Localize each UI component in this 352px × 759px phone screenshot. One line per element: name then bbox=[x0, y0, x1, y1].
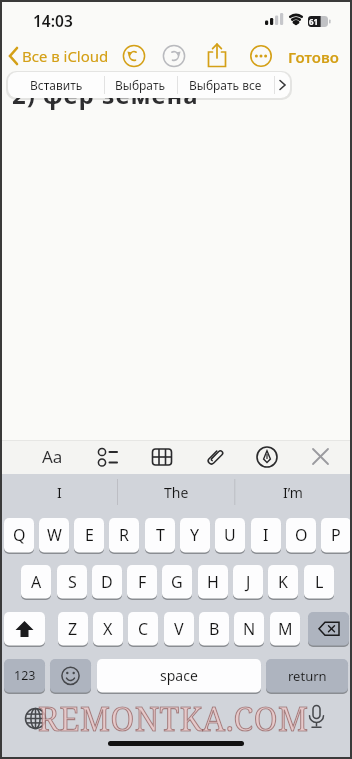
staticText: Y bbox=[190, 524, 200, 546]
button[interactable] bbox=[274, 72, 290, 98]
button[interactable]: Выбрать все bbox=[177, 72, 274, 98]
button[interactable]: O bbox=[286, 518, 316, 554]
button[interactable]: Q bbox=[4, 518, 34, 554]
staticText: The bbox=[164, 483, 189, 502]
staticText: 123 bbox=[14, 667, 36, 684]
staticText: M bbox=[278, 618, 293, 640]
button[interactable]: C bbox=[128, 612, 158, 647]
button[interactable]: Y bbox=[180, 518, 210, 554]
staticText: P bbox=[331, 524, 341, 546]
staticText: E bbox=[85, 524, 94, 546]
button[interactable]: return bbox=[266, 659, 348, 694]
button[interactable]: N bbox=[234, 612, 264, 647]
button[interactable]: Готово bbox=[288, 47, 339, 67]
button[interactable] bbox=[122, 44, 146, 68]
button[interactable] bbox=[307, 704, 326, 731]
staticText: H bbox=[207, 571, 219, 593]
staticText: F bbox=[138, 571, 147, 593]
button[interactable]: D bbox=[92, 565, 122, 600]
button[interactable]: X bbox=[93, 612, 123, 647]
staticText: 2) фер земена bbox=[12, 78, 199, 111]
button[interactable] bbox=[311, 447, 330, 466]
button[interactable] bbox=[151, 446, 173, 468]
staticText: J bbox=[246, 571, 251, 593]
button[interactable]: 123 bbox=[4, 659, 45, 694]
staticText: L bbox=[315, 571, 324, 593]
button[interactable]: R bbox=[109, 518, 139, 554]
staticText: U bbox=[224, 524, 236, 546]
staticText: space bbox=[160, 666, 198, 685]
button[interactable]: I bbox=[251, 518, 281, 554]
button[interactable]: W bbox=[39, 518, 69, 554]
button[interactable]: Z bbox=[58, 612, 88, 647]
button[interactable]: V bbox=[164, 612, 194, 647]
staticText: C bbox=[138, 618, 149, 640]
button[interactable]: E bbox=[74, 518, 104, 554]
button[interactable]: K bbox=[268, 565, 298, 600]
staticText: return bbox=[288, 667, 327, 685]
button[interactable] bbox=[50, 659, 91, 694]
button[interactable]: G bbox=[162, 565, 192, 600]
staticText: Aa bbox=[42, 445, 63, 468]
button[interactable]: F bbox=[127, 565, 157, 600]
staticText: Выбрать все bbox=[189, 77, 262, 93]
button[interactable]: U bbox=[215, 518, 245, 554]
staticText: A bbox=[31, 571, 42, 593]
staticText: REMONTKA.COM bbox=[38, 697, 309, 741]
button[interactable]: Выбрать bbox=[104, 72, 177, 98]
staticText: Все в iCloud bbox=[22, 46, 109, 66]
button[interactable]: H bbox=[198, 565, 228, 600]
button[interactable] bbox=[206, 42, 228, 69]
staticText: R bbox=[119, 524, 129, 546]
staticText: N bbox=[243, 618, 256, 640]
staticText: Z bbox=[68, 618, 78, 640]
staticText: 61 bbox=[309, 16, 319, 27]
staticText: I bbox=[263, 524, 269, 546]
staticText: K bbox=[278, 571, 288, 593]
staticText: Вставить bbox=[30, 77, 83, 93]
staticText: V bbox=[174, 618, 184, 640]
button[interactable]: P bbox=[321, 518, 351, 554]
button[interactable]: B bbox=[199, 612, 229, 647]
staticText: T bbox=[156, 524, 165, 546]
staticText: Выбрать bbox=[115, 77, 166, 93]
button[interactable]: space bbox=[97, 659, 261, 694]
staticText: I’m bbox=[283, 483, 303, 502]
button[interactable]: Все в iCloud bbox=[4, 44, 114, 68]
staticText: I bbox=[57, 483, 62, 502]
staticText: B bbox=[209, 618, 220, 640]
button[interactable]: M bbox=[270, 612, 300, 647]
button[interactable] bbox=[4, 612, 45, 647]
button[interactable]: Вставить bbox=[8, 72, 104, 98]
button[interactable] bbox=[162, 44, 186, 68]
staticText: Q bbox=[13, 524, 26, 546]
button[interactable] bbox=[97, 446, 119, 468]
staticText: REMONTKA.COM bbox=[38, 697, 309, 741]
staticText: W bbox=[47, 524, 62, 546]
staticText: G bbox=[171, 571, 183, 593]
staticText: D bbox=[101, 571, 113, 593]
staticText: S bbox=[68, 571, 77, 593]
button[interactable] bbox=[204, 445, 226, 469]
staticText: O bbox=[295, 524, 308, 546]
button[interactable]: A bbox=[21, 565, 51, 600]
staticText: 14:03 bbox=[33, 10, 73, 31]
staticText: X bbox=[103, 618, 113, 640]
button[interactable]: T bbox=[145, 518, 175, 554]
button[interactable] bbox=[24, 707, 47, 730]
button[interactable] bbox=[250, 45, 272, 67]
button[interactable]: L bbox=[304, 565, 334, 600]
button[interactable]: J bbox=[233, 565, 263, 600]
button[interactable] bbox=[256, 446, 278, 468]
button[interactable]: S bbox=[57, 565, 87, 600]
button[interactable] bbox=[308, 612, 349, 647]
